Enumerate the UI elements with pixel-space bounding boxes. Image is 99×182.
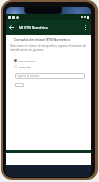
staticText: Consulta de enlace RTN Numérico	[14, 37, 70, 42]
button[interactable]: RTN numérico	[14, 58, 54, 63]
staticText: Seleccione el criterio de búsqueda y reg…	[10, 44, 87, 52]
staticText: Buscar	[16, 84, 24, 87]
button[interactable]: Ingrese el número	[15, 73, 85, 79]
staticText: Ingrese el número	[17, 74, 40, 78]
button[interactable]: Buscar	[15, 83, 24, 87]
button[interactable]: Back	[6, 22, 17, 33]
button[interactable]: Identidad	[14, 64, 54, 69]
staticText: MI RTN Numérico	[19, 25, 48, 30]
staticText: Identidad	[19, 65, 31, 68]
staticText: RTN numérico	[19, 59, 36, 62]
button[interactable]: More options	[80, 22, 91, 33]
